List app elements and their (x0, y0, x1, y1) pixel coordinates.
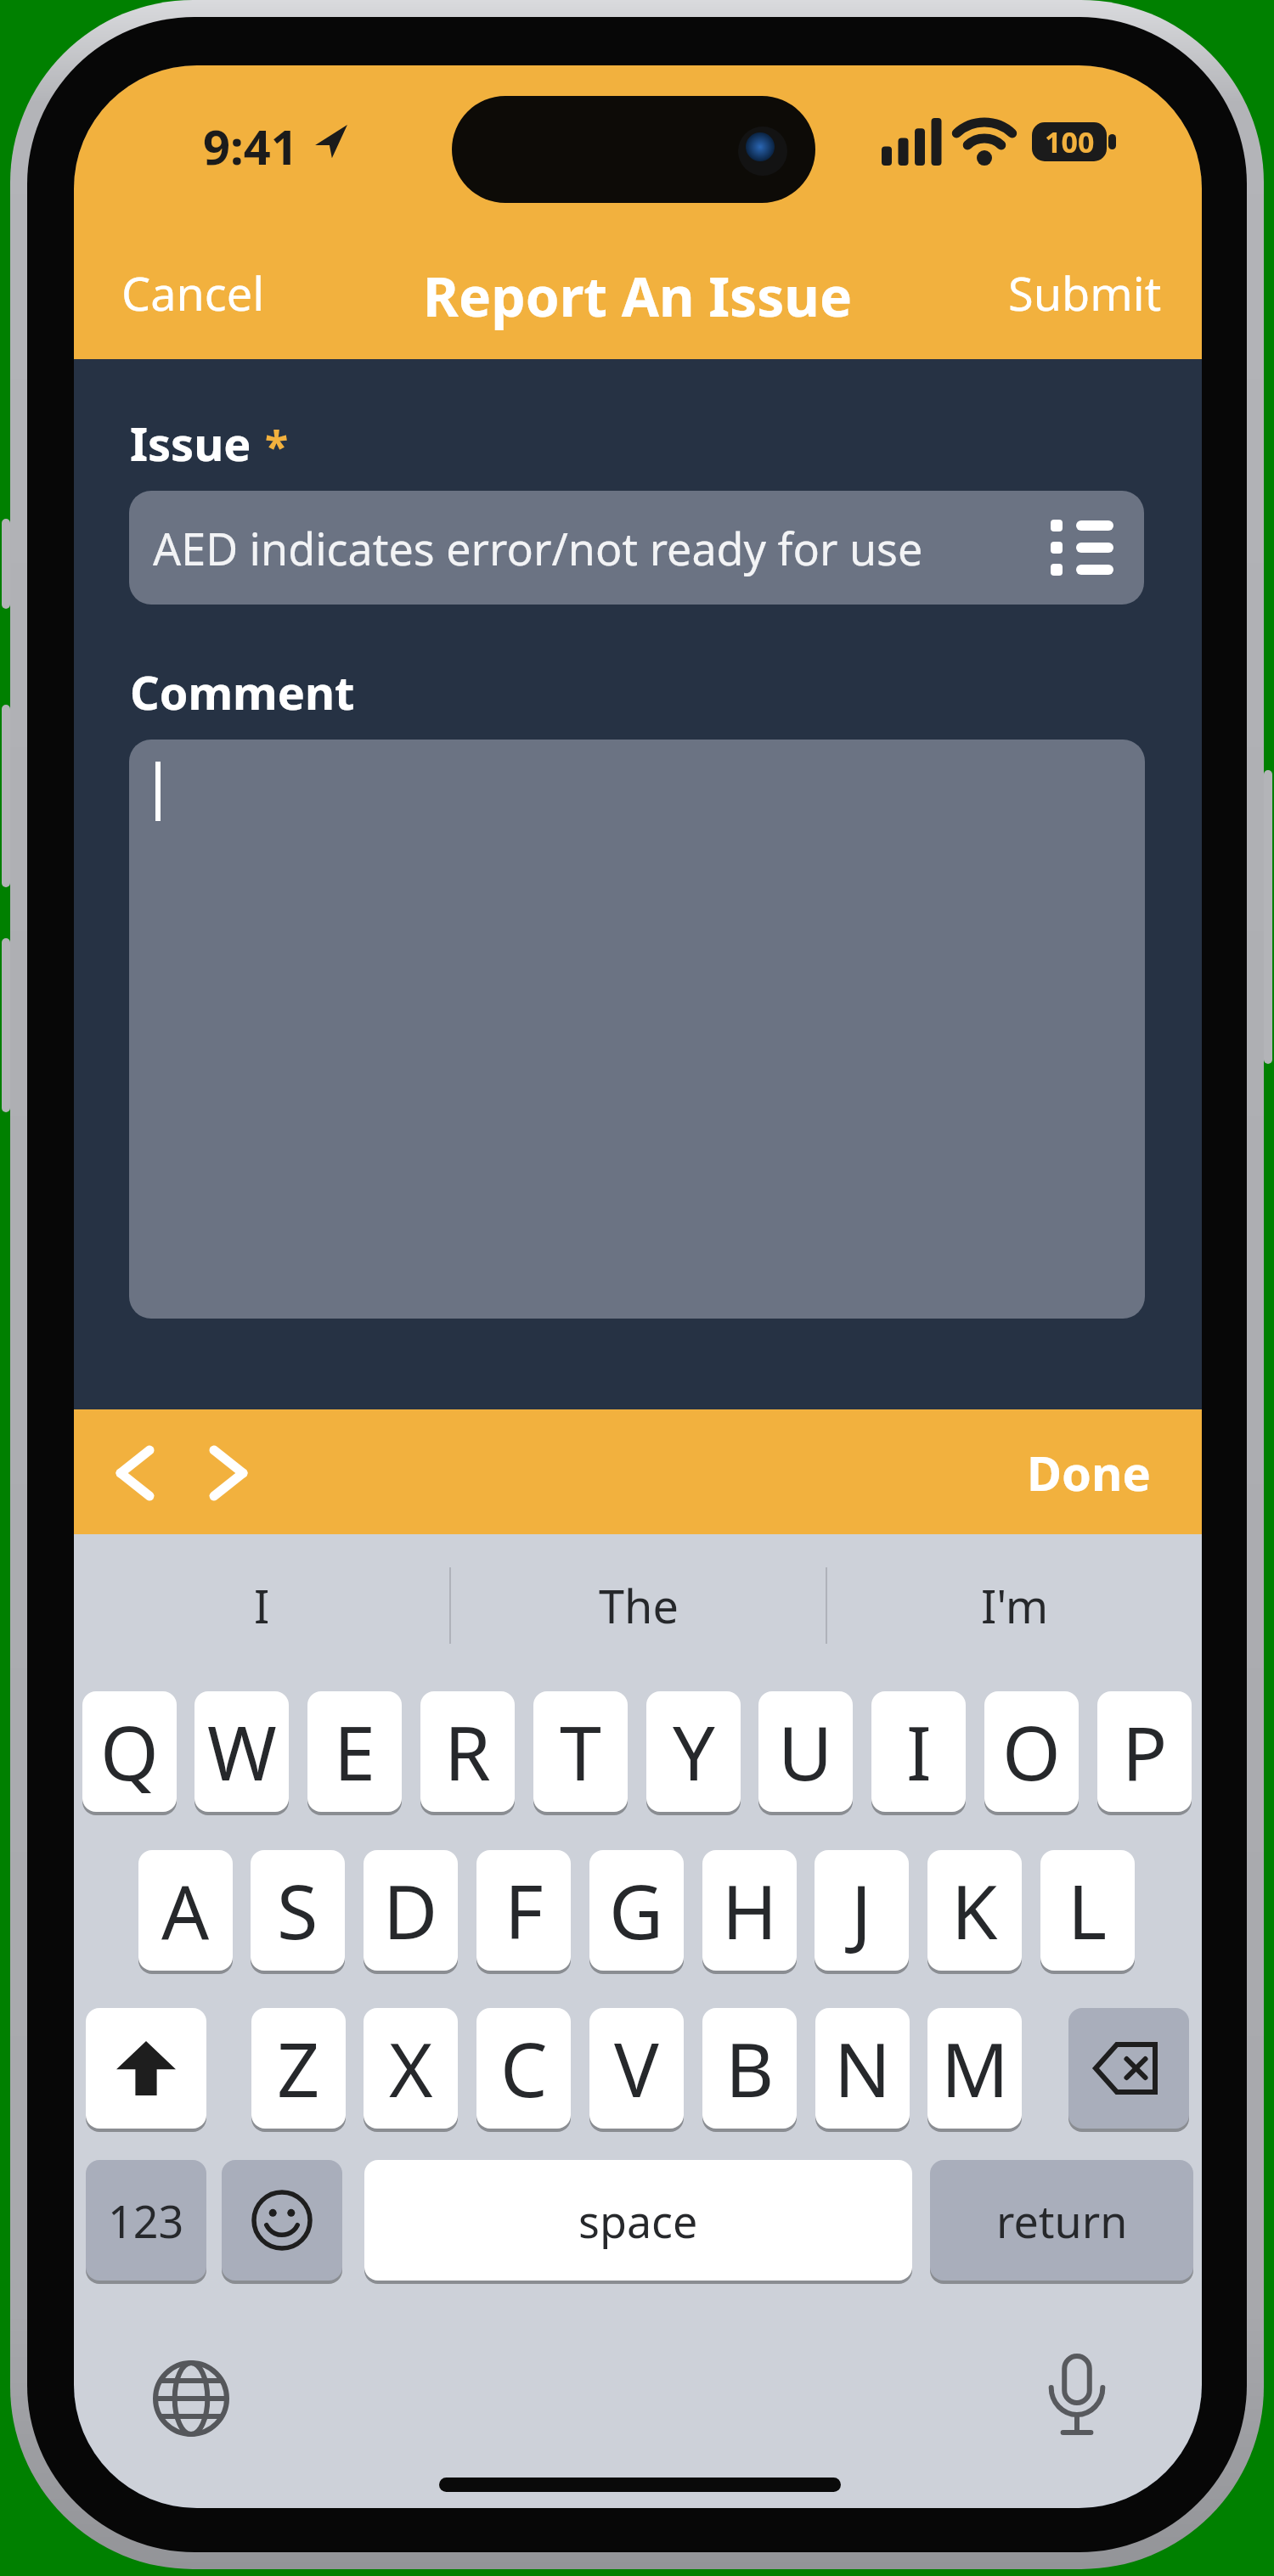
staticText: L (1068, 1859, 1108, 1961)
staticText: F (505, 1859, 544, 1961)
button[interactable]: return (930, 2160, 1193, 2281)
button[interactable]: O (984, 1691, 1079, 1812)
button[interactable]: Cancel (99, 252, 286, 333)
staticText: AED indicates error/not ready for use (153, 518, 923, 578)
staticText: N (834, 2017, 891, 2119)
staticText: M (941, 2017, 1009, 2119)
button[interactable]: space (364, 2160, 912, 2281)
staticText: Cancel (121, 262, 265, 324)
staticText: I (254, 1574, 270, 1637)
button[interactable]: W (194, 1691, 289, 1812)
staticText: K (951, 1859, 998, 1961)
button[interactable]: Y (646, 1691, 741, 1812)
staticText: P (1122, 1701, 1168, 1803)
button[interactable] (129, 740, 1145, 1319)
button[interactable]: C (476, 2008, 571, 2129)
button[interactable] (117, 1447, 153, 1499)
button[interactable]: M (927, 2008, 1022, 2129)
staticText: U (778, 1701, 833, 1803)
button[interactable]: I (74, 1534, 449, 1677)
button[interactable] (1068, 2008, 1189, 2129)
button[interactable]: K (927, 1850, 1022, 1971)
button[interactable]: Z (251, 2008, 346, 2129)
staticText: R (444, 1701, 491, 1803)
button[interactable]: P (1097, 1691, 1192, 1812)
staticText: Issue (130, 412, 251, 475)
staticText: D (383, 1859, 438, 1961)
button[interactable]: X (364, 2008, 458, 2129)
staticText: Done (1027, 1440, 1151, 1505)
staticText: W (207, 1701, 277, 1803)
staticText: Comment (130, 661, 355, 723)
staticText: S (277, 1859, 318, 1961)
button[interactable]: H (702, 1850, 797, 1971)
button[interactable]: 123 (86, 2160, 206, 2281)
button[interactable]: N (815, 2008, 910, 2129)
staticText: I (906, 1701, 932, 1803)
button[interactable]: I (871, 1691, 966, 1812)
button[interactable]: I'm (827, 1534, 1202, 1677)
button[interactable]: F (476, 1850, 571, 1971)
staticText: 123 (108, 2191, 184, 2251)
staticText: J (851, 1859, 872, 1961)
button[interactable]: A (138, 1850, 233, 1971)
button[interactable] (86, 2008, 206, 2129)
staticText: Y (673, 1701, 715, 1803)
button[interactable]: R (420, 1691, 515, 1812)
button[interactable] (152, 2359, 230, 2438)
button[interactable] (222, 2160, 342, 2281)
staticText: V (614, 2017, 659, 2119)
staticText: A (161, 1859, 210, 1961)
staticText: 9:41 (203, 114, 298, 178)
button[interactable]: L (1040, 1850, 1135, 1971)
button[interactable]: Q (82, 1691, 177, 1812)
staticText: H (722, 1859, 778, 1961)
staticText: O (1002, 1701, 1061, 1803)
staticText: Z (277, 2017, 320, 2119)
button[interactable]: The (451, 1534, 826, 1677)
staticText: * (265, 417, 289, 475)
button[interactable]: U (758, 1691, 853, 1812)
staticText: The (599, 1574, 679, 1637)
staticText: X (389, 2017, 433, 2119)
button[interactable] (211, 1447, 246, 1499)
staticText: B (725, 2017, 775, 2119)
button[interactable]: B (702, 2008, 797, 2129)
staticText: T (560, 1701, 601, 1803)
button[interactable]: D (364, 1850, 458, 1971)
staticText: Q (100, 1701, 159, 1803)
staticText: E (334, 1701, 375, 1803)
staticText: 100 (1045, 122, 1095, 161)
button[interactable]: Done (1027, 1440, 1151, 1505)
staticText: C (500, 2017, 548, 2119)
button[interactable] (1042, 2356, 1112, 2441)
staticText: space (578, 2191, 698, 2251)
button[interactable]: G (589, 1850, 684, 1971)
staticText: return (996, 2191, 1128, 2251)
button[interactable]: V (589, 2008, 684, 2129)
staticText: Report An Issue (423, 259, 853, 333)
staticText: Submit (1008, 262, 1162, 324)
button[interactable]: Submit (991, 252, 1178, 333)
button[interactable]: S (251, 1850, 345, 1971)
staticText: G (609, 1859, 664, 1961)
staticText: I'm (981, 1574, 1049, 1637)
button[interactable]: E (307, 1691, 402, 1812)
button[interactable]: AED indicates error/not ready for use (129, 491, 1144, 605)
button[interactable]: T (533, 1691, 628, 1812)
button[interactable]: J (815, 1850, 909, 1971)
